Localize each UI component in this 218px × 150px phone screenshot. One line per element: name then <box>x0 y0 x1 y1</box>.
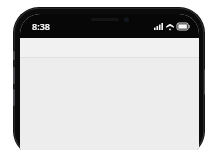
button[interactable]: Volume down <box>13 89 15 106</box>
button[interactable]: Volume up <box>13 67 15 84</box>
staticText: 8:38 <box>32 20 50 32</box>
button[interactable]: Power <box>204 69 205 95</box>
button[interactable]: Mute switch <box>13 51 15 60</box>
